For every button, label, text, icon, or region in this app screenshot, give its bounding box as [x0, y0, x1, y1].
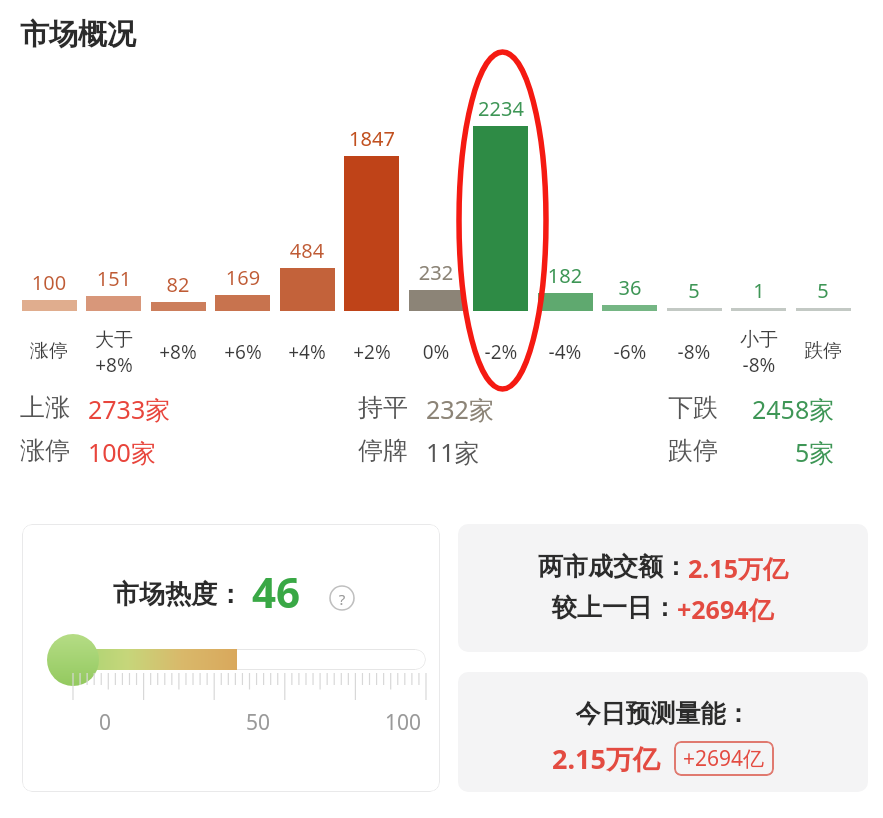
button[interactable]	[409, 290, 464, 311]
staticText: +8%	[138, 339, 218, 365]
staticText: 上涨	[20, 392, 70, 423]
staticText: 100	[385, 708, 422, 737]
staticText: +4%	[267, 339, 347, 365]
staticText: +8%	[74, 352, 154, 378]
staticText: 跌停	[668, 435, 718, 466]
staticText: 151	[74, 265, 154, 292]
staticText: 市场热度：	[113, 578, 243, 611]
button[interactable]: +2694亿	[683, 744, 765, 773]
staticText: +2%	[332, 339, 412, 365]
staticText: 跌停	[783, 339, 863, 363]
staticText: 232	[396, 259, 476, 286]
staticText: 50	[246, 708, 271, 737]
staticText: 大于	[74, 328, 154, 352]
button[interactable]: 上涨	[20, 392, 70, 423]
staticText: -8%	[654, 339, 734, 365]
staticText: 涨停	[9, 339, 89, 363]
button[interactable]	[458, 672, 868, 792]
button[interactable]: 停牌	[358, 435, 408, 466]
staticText: 0%	[396, 339, 476, 365]
button[interactable]	[22, 524, 440, 792]
staticText: ?	[329, 589, 355, 609]
staticText: 1847	[332, 125, 412, 152]
button[interactable]: 跌停	[668, 435, 718, 466]
staticText: 484	[267, 237, 347, 264]
button[interactable]: Help	[329, 585, 355, 611]
staticText: 100	[9, 269, 89, 296]
button[interactable]: 下跌	[668, 392, 718, 423]
staticText: 5	[654, 277, 734, 304]
button[interactable]	[458, 524, 868, 652]
staticText: 停牌	[358, 435, 408, 466]
button[interactable]: 持平	[358, 392, 408, 423]
staticText: 2234	[461, 95, 541, 122]
button[interactable]	[538, 293, 593, 311]
staticText: 36	[590, 274, 670, 301]
staticText: 小于	[719, 328, 799, 352]
staticText: 100家	[88, 435, 156, 469]
staticText: +2694亿	[683, 744, 765, 773]
staticText: 82	[138, 271, 218, 298]
staticText: 下跌	[668, 392, 718, 423]
staticText: 持平	[358, 392, 408, 423]
staticText: 11家	[426, 435, 480, 469]
staticText: -2%	[461, 339, 541, 365]
staticText: 5家	[795, 435, 835, 469]
staticText: 182	[525, 262, 605, 289]
button[interactable]: 涨停	[20, 435, 70, 466]
staticText: 5	[783, 277, 863, 304]
staticText: 涨停	[20, 435, 70, 466]
staticText: 0	[99, 708, 112, 737]
staticText: +2694亿	[677, 592, 774, 626]
staticText: 1	[719, 277, 799, 304]
staticText: 232家	[426, 392, 494, 426]
staticText: -6%	[590, 339, 670, 365]
staticText: 2.15万亿	[552, 740, 660, 777]
staticText: -4%	[525, 339, 605, 365]
staticText: 较上一日：	[552, 592, 677, 623]
staticText: 169	[203, 264, 283, 291]
staticText: 2458家	[752, 392, 835, 426]
staticText: 2.15万亿	[688, 551, 788, 585]
staticText: 46	[252, 563, 301, 620]
staticText: 市场概况	[20, 16, 136, 53]
staticText: +6%	[203, 339, 283, 365]
staticText: -8%	[719, 352, 799, 378]
staticText: 今日预测量能：	[458, 698, 868, 729]
staticText: 2733家	[88, 392, 171, 426]
button[interactable]: Heat slider	[47, 634, 99, 686]
staticText: 两市成交额：	[538, 551, 688, 582]
